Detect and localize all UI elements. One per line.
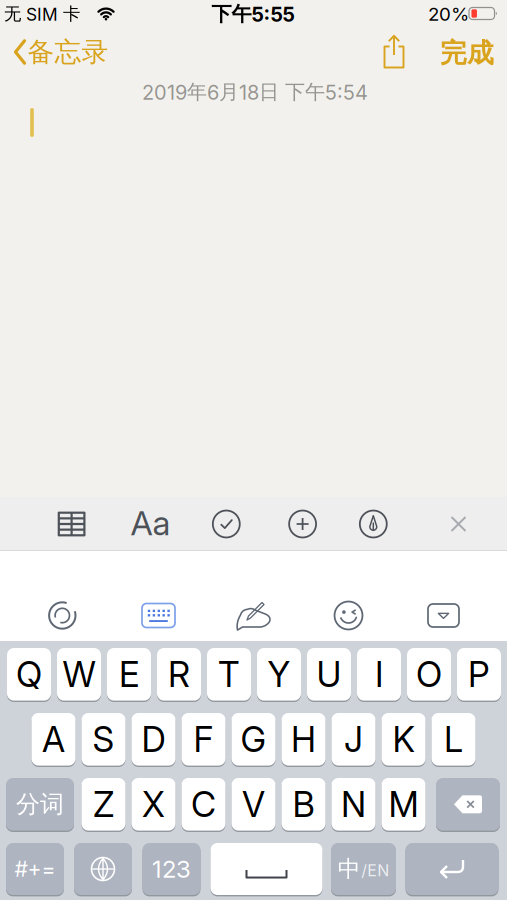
- button[interactable]: [74, 842, 132, 896]
- button[interactable]: [360, 510, 387, 537]
- button[interactable]: Q: [7, 647, 51, 702]
- button[interactable]: S: [81, 712, 125, 767]
- button[interactable]: Y: [257, 647, 301, 702]
- staticText: 完成: [440, 37, 494, 69]
- button[interactable]: 完成: [440, 37, 494, 69]
- staticText: Aa: [130, 503, 170, 543]
- button[interactable]: [450, 515, 467, 532]
- staticText: 下午5:55: [211, 2, 294, 26]
- staticText: Q: [16, 654, 42, 695]
- staticText: /EN: [361, 861, 389, 880]
- button[interactable]: C: [181, 777, 225, 832]
- button[interactable]: 中: [331, 842, 396, 896]
- button[interactable]: E: [107, 647, 151, 702]
- button[interactable]: P: [457, 647, 501, 702]
- staticText: D: [141, 719, 165, 760]
- button[interactable]: [234, 600, 272, 631]
- staticText: W: [62, 654, 95, 695]
- button[interactable]: J: [331, 712, 375, 767]
- staticText: I: [375, 654, 383, 695]
- button[interactable]: [405, 842, 498, 896]
- staticText: E: [119, 654, 139, 695]
- button[interactable]: M: [381, 777, 425, 832]
- staticText: T: [218, 654, 240, 695]
- button[interactable]: [58, 511, 86, 536]
- button[interactable]: 分词: [6, 777, 74, 832]
- staticText: X: [142, 784, 165, 825]
- staticText: L: [444, 719, 463, 760]
- button[interactable]: [142, 603, 175, 627]
- staticText: U: [316, 654, 341, 695]
- staticText: 20%: [428, 3, 469, 25]
- button[interactable]: [428, 604, 459, 627]
- staticText: 中: [338, 855, 361, 883]
- staticText: 分词: [16, 790, 64, 819]
- button[interactable]: Z: [81, 777, 125, 832]
- staticText: K: [392, 719, 414, 760]
- staticText: F: [193, 719, 213, 760]
- button[interactable]: [47, 600, 77, 630]
- button[interactable]: [436, 777, 500, 832]
- button[interactable]: V: [231, 777, 275, 832]
- button[interactable]: 备忘录: [0, 28, 110, 76]
- staticText: 备忘录: [27, 36, 108, 68]
- button[interactable]: R: [157, 647, 201, 702]
- staticText: 2019年6月18日 下午5:54: [142, 80, 368, 104]
- button[interactable]: L: [431, 712, 475, 767]
- button[interactable]: T: [207, 647, 251, 702]
- button[interactable]: [381, 34, 407, 70]
- staticText: R: [168, 654, 190, 695]
- staticText: H: [291, 719, 316, 760]
- button[interactable]: N: [331, 777, 375, 832]
- button[interactable]: A: [31, 712, 75, 767]
- staticText: #+=: [14, 856, 55, 882]
- staticText: C: [191, 784, 216, 825]
- staticText: J: [344, 719, 363, 760]
- staticText: P: [468, 654, 490, 695]
- staticText: 无 SIM 卡: [4, 3, 80, 25]
- button[interactable]: O: [407, 647, 451, 702]
- button[interactable]: Aa: [130, 503, 170, 543]
- button[interactable]: 123: [142, 842, 200, 896]
- staticText: Y: [267, 654, 290, 695]
- button[interactable]: [289, 510, 316, 537]
- button[interactable]: F: [181, 712, 225, 767]
- button[interactable]: #+=: [6, 842, 64, 896]
- button[interactable]: X: [131, 777, 175, 832]
- button[interactable]: [334, 601, 362, 629]
- staticText: Z: [93, 784, 114, 825]
- staticText: G: [240, 719, 266, 760]
- staticText: N: [341, 784, 366, 825]
- staticText: S: [92, 719, 114, 760]
- button[interactable]: [210, 842, 322, 896]
- staticText: 123: [152, 855, 191, 883]
- button[interactable]: K: [381, 712, 425, 767]
- staticText: O: [416, 654, 442, 695]
- button[interactable]: G: [231, 712, 275, 767]
- button[interactable]: D: [131, 712, 175, 767]
- button[interactable]: W: [57, 647, 101, 702]
- button[interactable]: B: [281, 777, 325, 832]
- button[interactable]: H: [281, 712, 325, 767]
- staticText: B: [292, 784, 314, 825]
- button[interactable]: [213, 510, 240, 537]
- button[interactable]: U: [307, 647, 351, 702]
- staticText: V: [242, 784, 265, 825]
- button[interactable]: I: [357, 647, 401, 702]
- staticText: A: [42, 719, 65, 760]
- staticText: M: [388, 784, 418, 825]
